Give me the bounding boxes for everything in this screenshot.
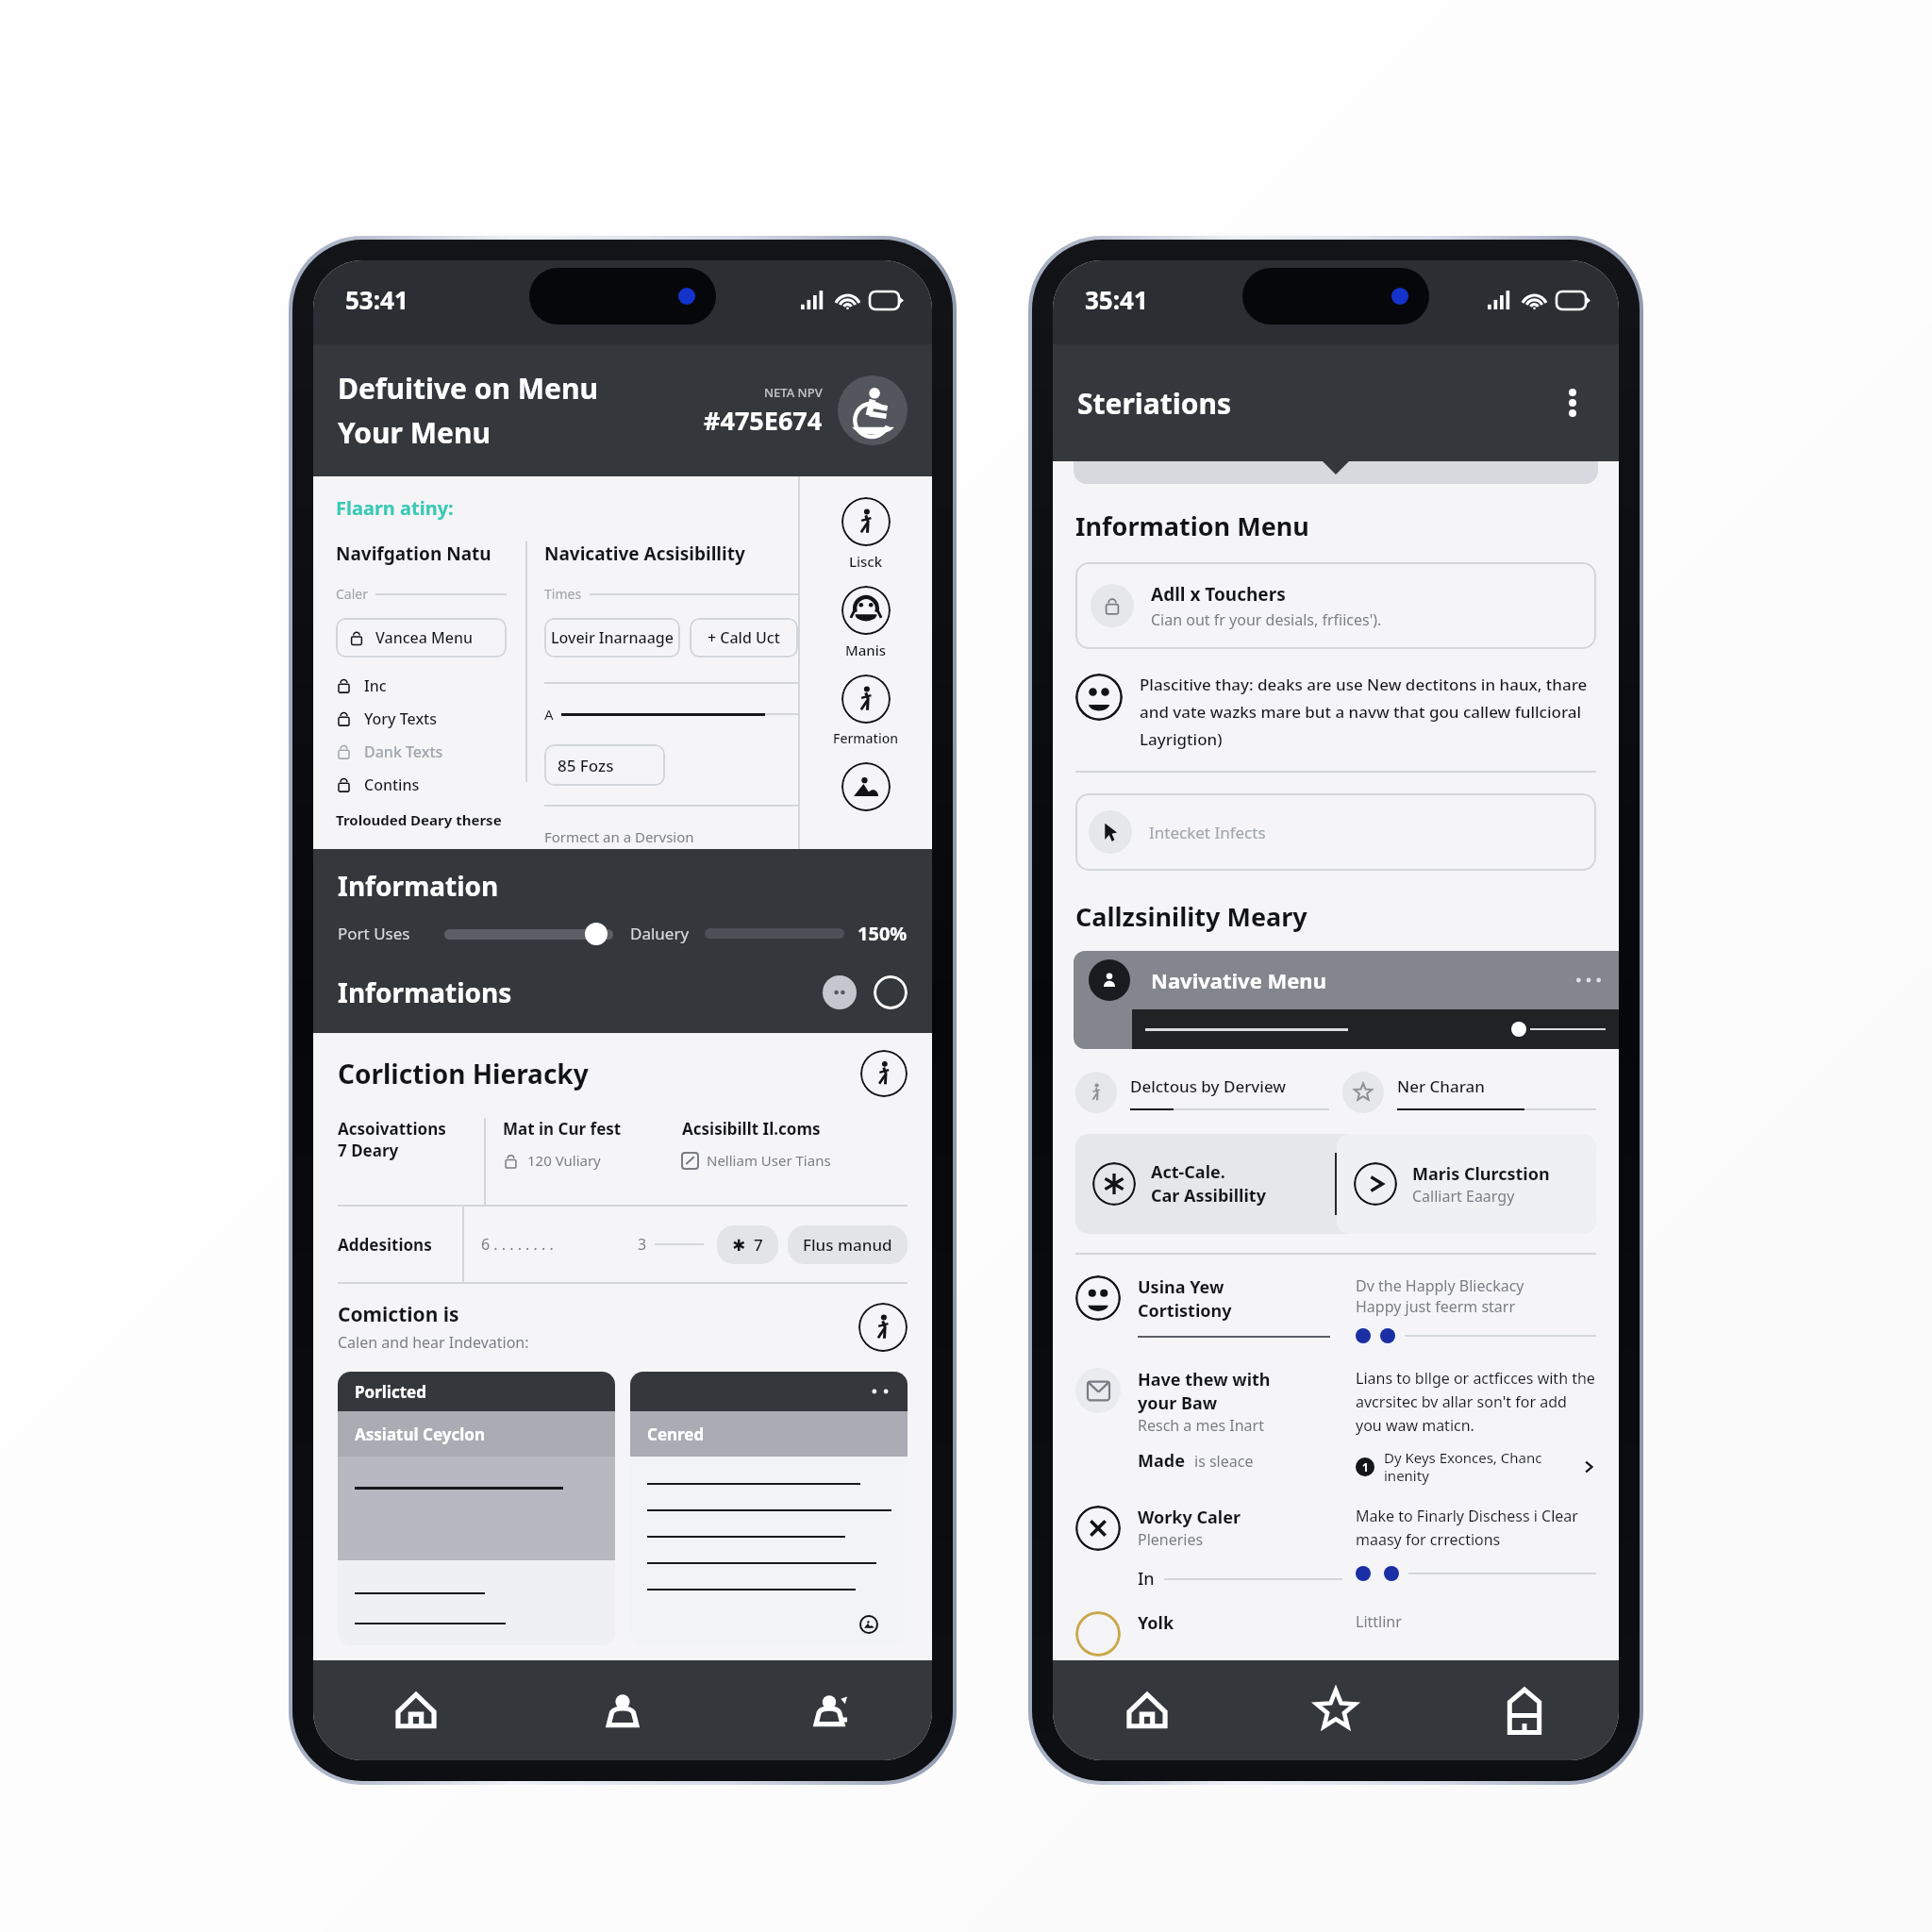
staticText: Nelliam User Tians [707, 1151, 831, 1170]
staticText: Cenred [647, 1424, 705, 1445]
staticText: #475E674 [704, 403, 823, 438]
button[interactable]: Yory Texts [336, 702, 507, 735]
staticText: Information Menu [1075, 508, 1309, 543]
staticText: Adll x Touchers [1151, 582, 1286, 607]
staticText: 150% [858, 921, 908, 946]
button[interactable]: Defuitive on Menu [313, 344, 932, 476]
staticText: Lians to bllge or actficces with the avc… [1356, 1368, 1596, 1435]
staticText: NETA NPV [764, 384, 823, 401]
staticText: Make to Finarly Dischess i Clear maasy f… [1356, 1506, 1596, 1549]
button[interactable]: Walk [860, 1050, 908, 1097]
staticText: Navicative Acsisibillity [544, 541, 745, 566]
button[interactable]: Account [725, 1660, 932, 1760]
staticText: Daluery [630, 923, 690, 944]
button[interactable]: Face [1075, 674, 1123, 721]
staticText: Ner Charan [1397, 1075, 1485, 1097]
button[interactable]: Loveir Inarnaage [544, 618, 680, 658]
button[interactable]: Contins [336, 768, 507, 801]
button[interactable]: Porlicted [338, 1372, 615, 1645]
staticText: Flus manud [803, 1234, 892, 1256]
staticText: is sleace [1194, 1451, 1254, 1472]
button[interactable]: Vancea Menu [336, 618, 507, 658]
staticText: In [1138, 1567, 1155, 1591]
staticText: Have thew with [1138, 1368, 1271, 1391]
button[interactable]: Flus manud [788, 1225, 908, 1264]
button[interactable]: Walk [858, 1303, 908, 1352]
staticText: Happy just feerm starr [1356, 1296, 1516, 1317]
staticText: Intecket Infects [1149, 822, 1266, 843]
button[interactable]: Photos [841, 762, 891, 811]
button[interactable]: Fermation [841, 675, 891, 724]
staticText: Dank Texts [364, 741, 443, 762]
button[interactable]: Cenred [630, 1372, 908, 1645]
staticText: Loveir Inarnaage [551, 627, 674, 648]
staticText: Resch a mes Inart [1138, 1415, 1264, 1436]
button[interactable]: More options [1551, 381, 1594, 425]
button[interactable]: Profile [519, 1660, 725, 1760]
button[interactable]: More [823, 975, 857, 1009]
staticText: Calliart Eaargy [1412, 1186, 1515, 1207]
staticText: Maris Clurcstion [1412, 1162, 1550, 1186]
staticText: Cian out fr your desials, frfiices'). [1151, 609, 1382, 630]
button[interactable]: Progress handle [1511, 1022, 1526, 1037]
staticText: Worky Caler [1138, 1506, 1241, 1529]
button[interactable]: 85 Fozs [544, 744, 665, 786]
button[interactable]: + Cald Uct [690, 618, 798, 658]
staticText: Your Menu [338, 413, 491, 452]
staticText: Yolk [1138, 1611, 1174, 1635]
button[interactable]: Maris [1354, 1162, 1397, 1206]
button[interactable]: Toggle [874, 975, 908, 1009]
staticText: Navivative Menu [1151, 966, 1575, 994]
staticText: ✱ 7 [732, 1234, 763, 1256]
button[interactable]: Port Uses slider [585, 923, 608, 945]
button[interactable]: Rating 7 [717, 1225, 778, 1264]
button[interactable]: Lisck [841, 497, 891, 546]
staticText: Comiction is [338, 1301, 459, 1328]
staticText: Formect an a Dervsion [544, 827, 694, 846]
staticText: Inc [364, 675, 387, 696]
staticText: Addesitions [338, 1234, 462, 1256]
staticText: 7 Deary [338, 1140, 399, 1161]
button[interactable]: Accessibility [838, 375, 908, 445]
button[interactable]: Intecket Infects [1075, 793, 1596, 871]
button[interactable]: Store [1430, 1660, 1619, 1760]
staticText: 6 . . . . . . . . [481, 1234, 638, 1255]
staticText: + Cald Uct [708, 627, 780, 648]
staticText: Made [1138, 1449, 1185, 1473]
button[interactable]: Dank Texts [336, 735, 507, 768]
staticText: Yory Texts [364, 708, 438, 729]
staticText: Porlicted [355, 1381, 426, 1403]
button[interactable]: Manis [841, 586, 891, 635]
button[interactable]: Maris [1337, 1134, 1596, 1234]
staticText: 120 Vuliary [527, 1151, 601, 1170]
staticText: Plascitive thay: deaks are use New decti… [1140, 674, 1596, 750]
button[interactable]: Favorites [1241, 1660, 1430, 1760]
button[interactable]: Close [1075, 1506, 1121, 1551]
staticText: Corliction Hieracky [338, 1056, 860, 1091]
button[interactable]: Home [1053, 1660, 1241, 1760]
button[interactable]: Adll x Touchers [1075, 562, 1596, 649]
button[interactable]: Inc [336, 669, 507, 702]
staticText: Flaarn atiny: [336, 495, 454, 521]
staticText: Lisck [849, 552, 883, 571]
button[interactable]: Photos [843, 1615, 894, 1634]
staticText: Assiatul Ceyclon [355, 1424, 485, 1445]
staticText: Port Uses [338, 923, 410, 944]
button[interactable]: Act-Cale [1075, 1134, 1335, 1234]
button[interactable]: Home [313, 1660, 519, 1760]
staticText: Fermation [833, 729, 899, 747]
button[interactable]: Act-Cale [1092, 1162, 1136, 1206]
staticText: A [544, 705, 554, 724]
button[interactable]: Navivative Menu [1074, 951, 1619, 1049]
staticText: Manis [845, 641, 887, 659]
staticText: your Baw [1138, 1391, 1218, 1415]
staticText: Navifgation Natu [336, 541, 491, 566]
button[interactable]: Usina Yew [1075, 1275, 1121, 1321]
staticText: Littlinr [1356, 1611, 1402, 1632]
staticText: Times [544, 585, 582, 603]
staticText: Car Assibillity [1151, 1184, 1266, 1207]
staticText: 1 [1362, 1459, 1369, 1474]
staticText: Dy Keys Exonces, Chanc inenity [1384, 1448, 1581, 1485]
staticText: Dv the Happly Blieckacy [1356, 1275, 1524, 1296]
staticText: Steriations [1077, 384, 1551, 423]
